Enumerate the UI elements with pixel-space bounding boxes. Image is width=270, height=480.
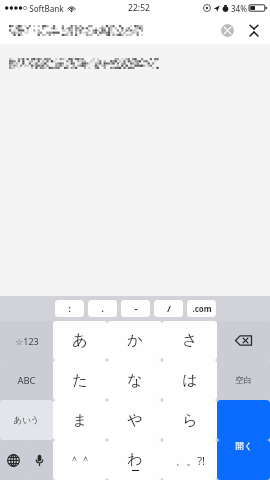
button[interactable]: Voice input bbox=[26, 440, 53, 480]
staticText: - bbox=[134, 302, 138, 315]
button[interactable]: / bbox=[154, 300, 183, 317]
staticText: か bbox=[127, 331, 143, 350]
staticText: ☆123 bbox=[15, 335, 39, 347]
staticText: . bbox=[101, 302, 104, 315]
button[interactable]: Delete bbox=[217, 321, 270, 360]
button[interactable]: ☆123 bbox=[0, 321, 53, 360]
button[interactable]: あいう bbox=[0, 400, 53, 440]
button[interactable]: Collapse bbox=[242, 18, 266, 42]
button[interactable]: ら bbox=[162, 400, 217, 440]
button[interactable]: 開く bbox=[217, 440, 270, 480]
button[interactable]: ABC bbox=[0, 360, 53, 400]
staticText: .com bbox=[192, 303, 212, 314]
staticText: 空白 bbox=[235, 375, 252, 386]
staticText: あいう bbox=[13, 415, 40, 426]
staticText: ABC bbox=[17, 374, 36, 387]
button[interactable]: な bbox=[107, 360, 162, 400]
staticText: / bbox=[167, 302, 171, 315]
staticText: ま bbox=[72, 411, 88, 430]
button[interactable]: あ bbox=[53, 321, 107, 360]
staticText: ＾＾ bbox=[69, 453, 91, 467]
staticText: 、。?! bbox=[175, 453, 205, 468]
staticText: : bbox=[68, 302, 71, 315]
button[interactable]: か bbox=[107, 321, 162, 360]
button[interactable]: ＾＾ bbox=[53, 440, 107, 480]
staticText: あ bbox=[72, 331, 88, 350]
button[interactable] bbox=[9, 58, 157, 68]
staticText: た bbox=[72, 371, 88, 390]
staticText: 22:52 bbox=[128, 2, 150, 14]
staticText: な bbox=[127, 371, 143, 390]
button[interactable]: さ bbox=[162, 321, 217, 360]
button[interactable]: 、。?! bbox=[162, 440, 217, 480]
button[interactable]: Clear text bbox=[214, 17, 240, 43]
button[interactable]: .com bbox=[187, 300, 216, 317]
staticText: わ bbox=[127, 450, 143, 469]
staticText: 開く bbox=[235, 441, 253, 452]
button[interactable]: わ bbox=[107, 440, 162, 480]
button[interactable]: た bbox=[53, 360, 107, 400]
button[interactable]: . bbox=[88, 300, 117, 317]
button[interactable]: ま bbox=[53, 400, 107, 440]
staticText: さ bbox=[182, 331, 198, 350]
button[interactable]: は bbox=[162, 360, 217, 400]
button[interactable] bbox=[217, 400, 270, 440]
button[interactable]: - bbox=[121, 300, 150, 317]
staticText: は bbox=[182, 371, 198, 390]
staticText: や bbox=[127, 411, 143, 430]
staticText: SoftBank bbox=[29, 3, 64, 14]
button[interactable]: Switch keyboard bbox=[0, 440, 26, 480]
button[interactable]: や bbox=[107, 400, 162, 440]
button[interactable]: 空白 bbox=[217, 360, 270, 400]
staticText: 34% bbox=[231, 3, 247, 14]
staticText: ら bbox=[182, 411, 198, 430]
button[interactable]: : bbox=[55, 300, 84, 317]
